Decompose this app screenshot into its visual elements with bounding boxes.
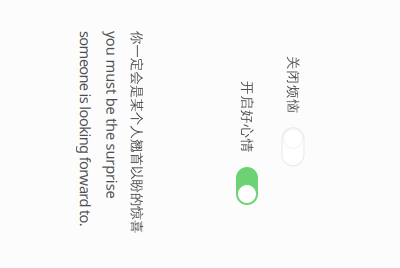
staticText: 关闭烦恼 xyxy=(122,33,179,49)
staticText: you must be the surprise xyxy=(97,212,264,232)
staticText: 你一定会是某个人翘首以盼的惊喜 xyxy=(97,189,299,205)
button[interactable]: 开启好心情 xyxy=(233,76,271,98)
